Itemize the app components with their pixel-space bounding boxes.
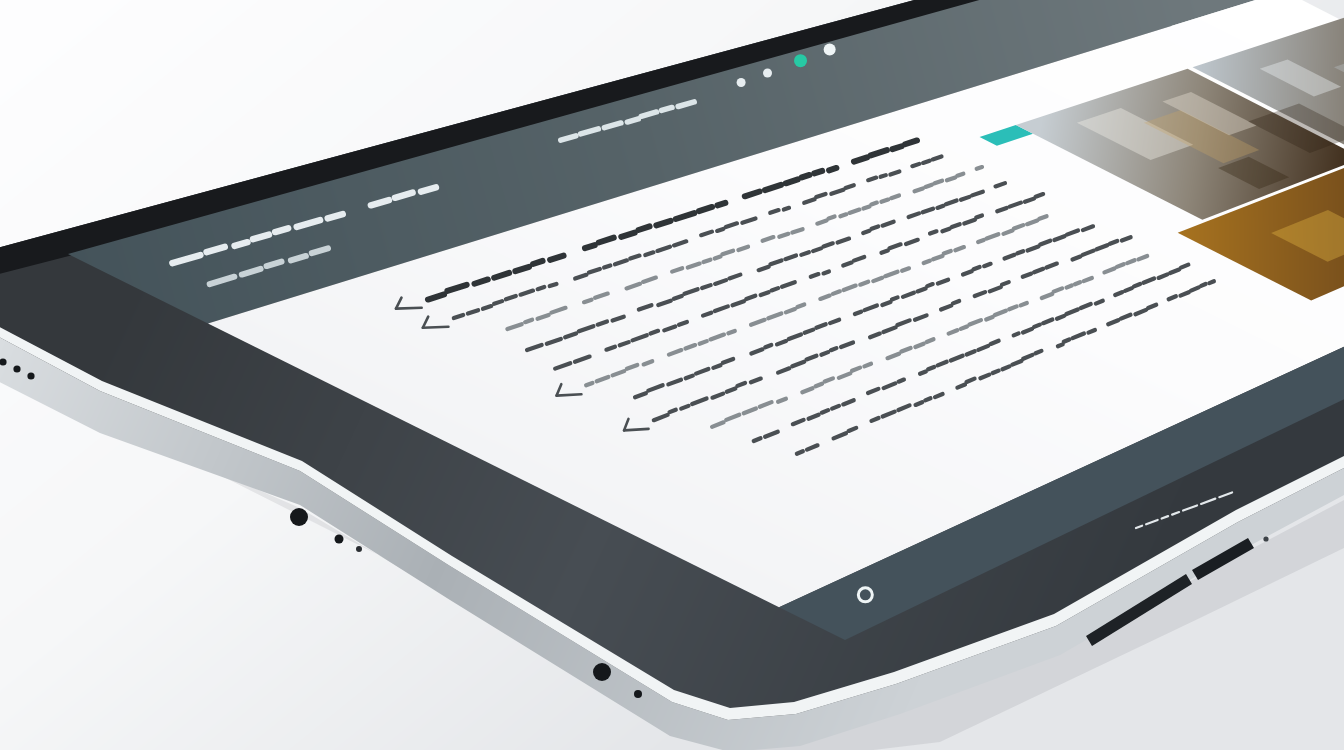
button[interactable]: Tablet showing a document reader app: [0, 0, 1344, 750]
